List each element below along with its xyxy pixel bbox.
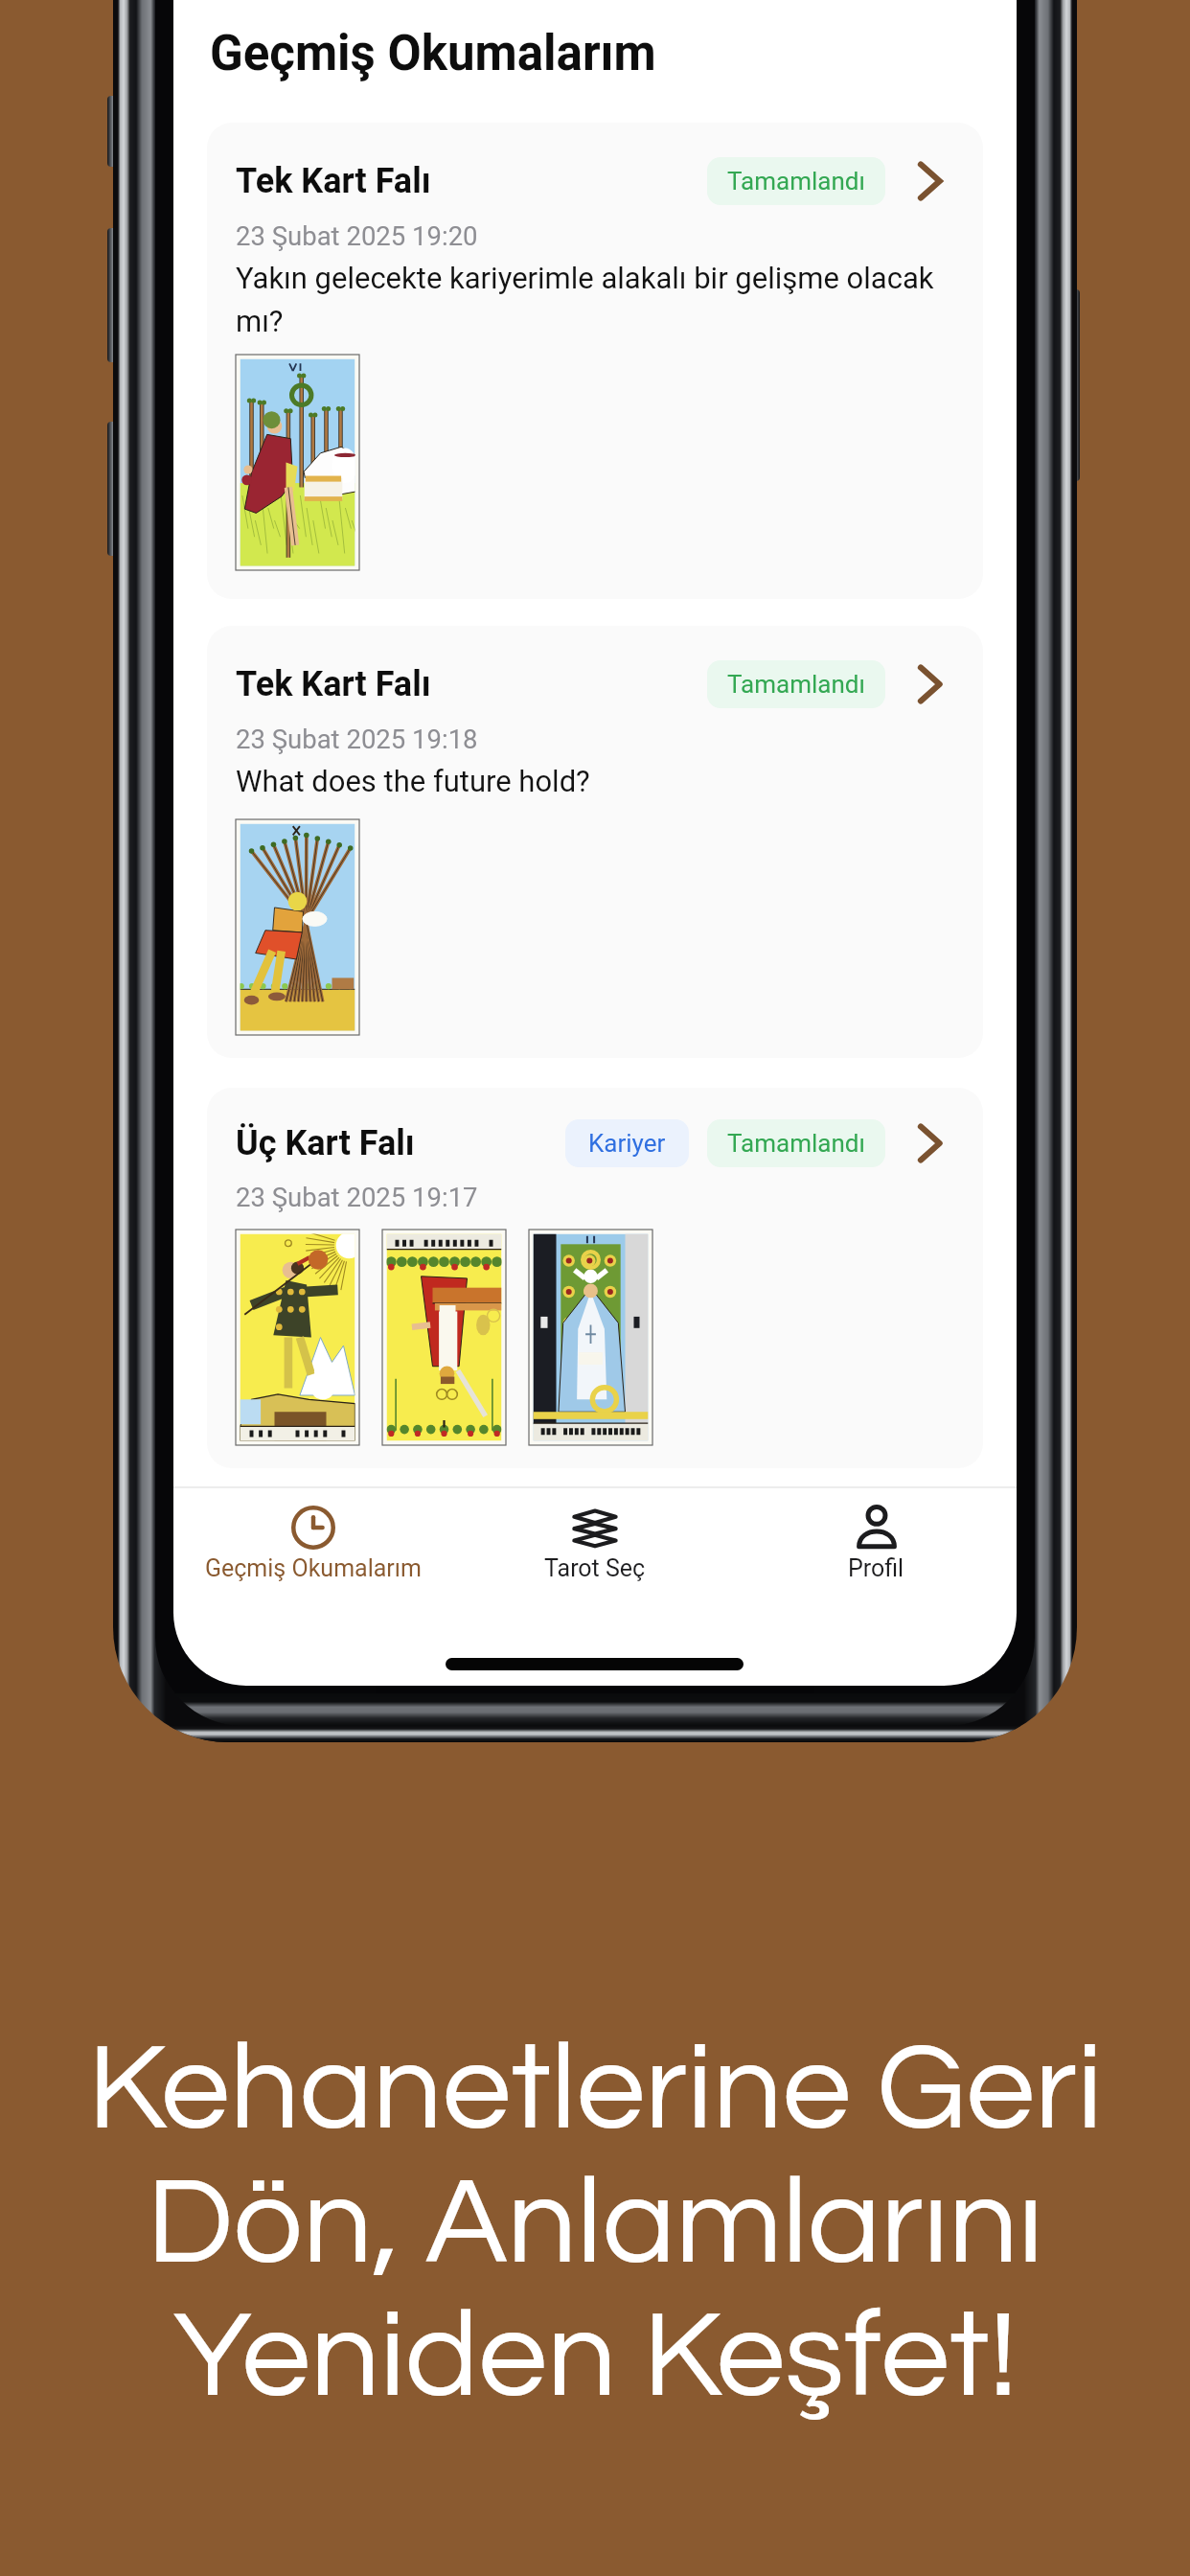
staticText: Profil [848, 1554, 904, 1582]
button[interactable]: Ayrıntıları aç [918, 660, 960, 708]
button[interactable]: Kariyer [565, 1119, 689, 1167]
button[interactable]: Geçmiş Okumalarım [173, 1486, 453, 1611]
button[interactable]: Tek Kart Falı [207, 123, 983, 599]
staticText: Tamamlandı [727, 1129, 865, 1158]
staticText: Tamamlandı [727, 670, 865, 699]
button[interactable]: Ayrıntıları aç [918, 157, 960, 205]
button[interactable]: Tarot Seç [461, 1486, 729, 1611]
button[interactable]: Tek Kart Falı [207, 626, 983, 1058]
button[interactable]: Tamamlandı [707, 1119, 885, 1167]
staticText: Tamamlandı [727, 167, 865, 195]
button[interactable]: Ayrıntıları aç [918, 1119, 960, 1167]
button[interactable]: Tamamlandı [707, 157, 885, 205]
staticText: 23 Şubat 2025 19:18 [236, 724, 478, 754]
staticText: Üç Kart Falı [236, 1123, 415, 1163]
staticText: 23 Şubat 2025 19:20 [236, 220, 478, 251]
staticText: Yakın gelecekte kariyerimle alakalı bir … [236, 261, 950, 338]
button[interactable]: Üç Kart Falı [207, 1088, 983, 1468]
staticText: 23 Şubat 2025 19:17 [236, 1182, 478, 1212]
staticText: What does the future hold? [236, 764, 950, 798]
staticText: Geçmiş Okumalarım [210, 25, 656, 82]
button[interactable]: Profil [736, 1486, 1017, 1611]
staticText: Tek Kart Falı [236, 664, 431, 704]
staticText: Kehanetlerine Geri Dön, Anlamlarını Yeni… [0, 2027, 1190, 2421]
staticText: Tarot Seç [544, 1554, 646, 1582]
button[interactable]: Tamamlandı [707, 660, 885, 708]
staticText: Kariyer [588, 1129, 666, 1158]
staticText: Geçmiş Okumalarım [205, 1554, 422, 1582]
staticText: Tek Kart Falı [236, 161, 431, 201]
